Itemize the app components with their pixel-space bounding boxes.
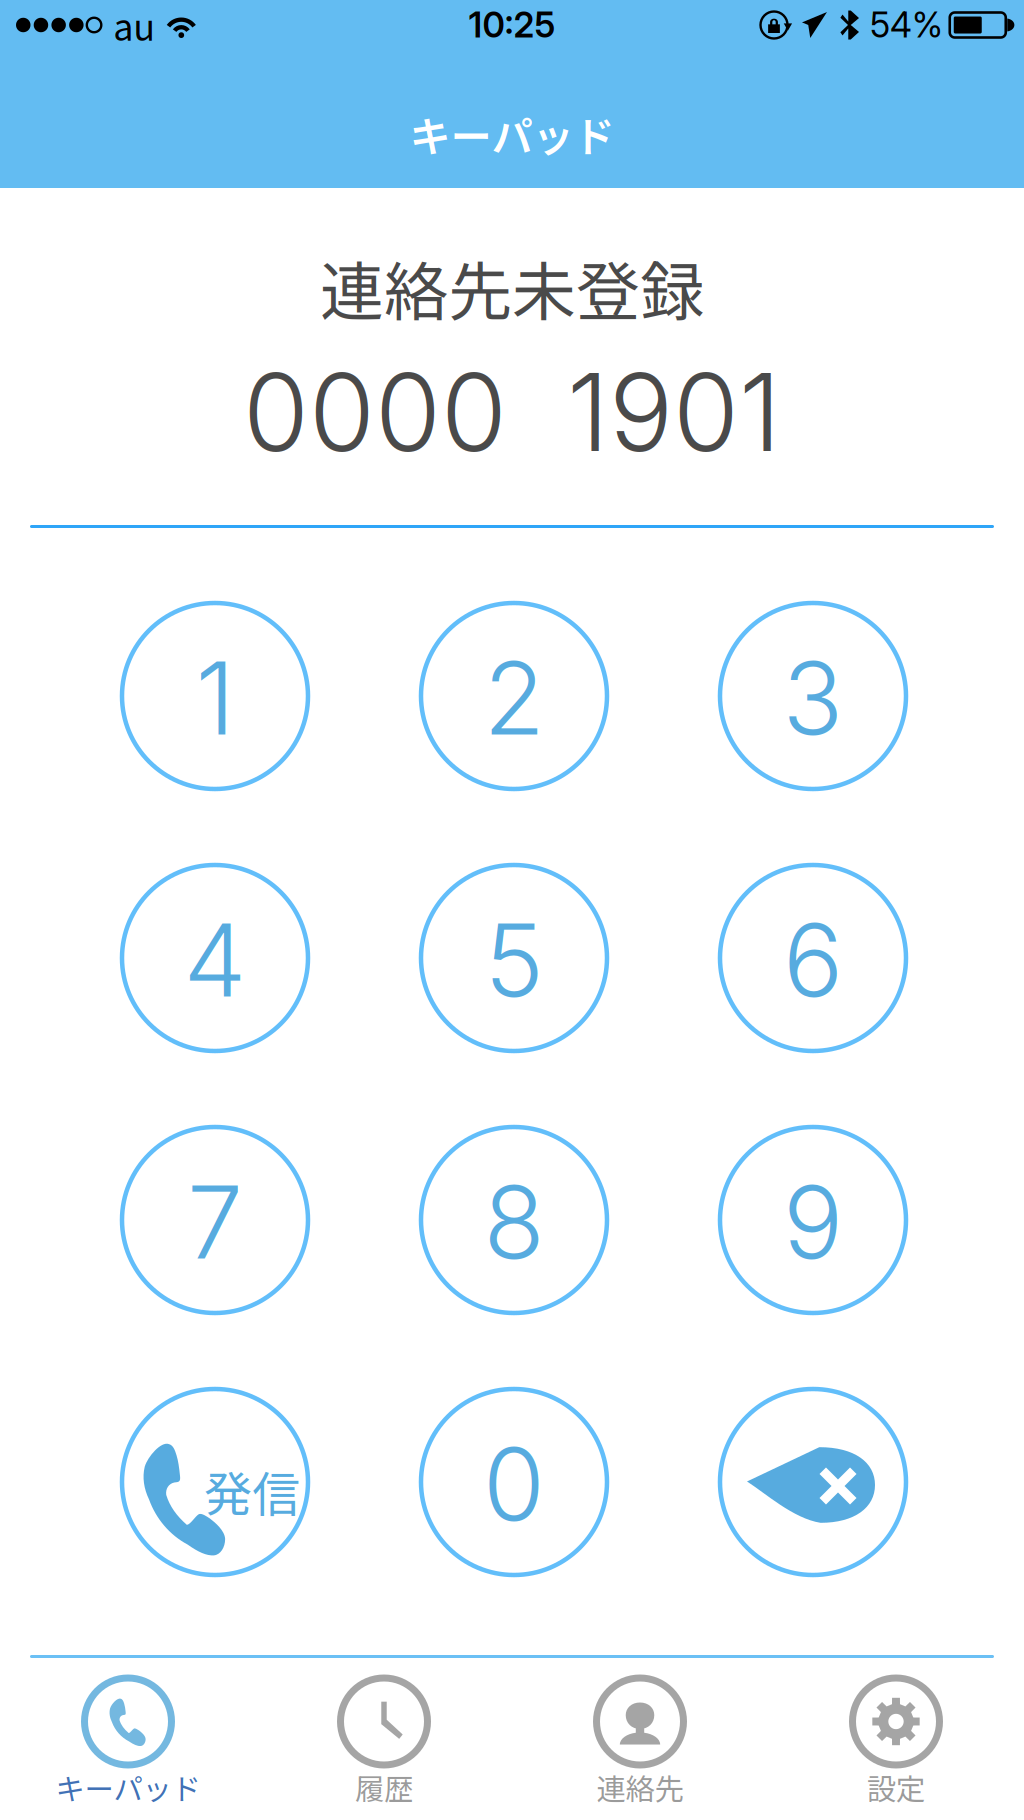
button[interactable]: 5 <box>421 865 607 1051</box>
button[interactable]: 8 <box>421 1127 607 1313</box>
button[interactable]: 設定 <box>768 1678 1024 1808</box>
button[interactable]: 0 <box>421 1389 607 1575</box>
staticText: 7 <box>187 1161 243 1282</box>
button[interactable]: 9 <box>720 1127 906 1313</box>
button[interactable]: 3 <box>720 603 906 789</box>
staticText: 0 <box>483 1423 545 1544</box>
staticText: 設定 <box>867 1766 925 1808</box>
staticText: キーパッド <box>409 104 614 164</box>
button[interactable]: 削除 <box>720 1389 906 1575</box>
staticText: 履歴 <box>355 1766 413 1808</box>
staticText: 4 <box>183 899 246 1020</box>
staticText: 0000 1901 <box>243 348 781 477</box>
staticText: 連絡先 <box>596 1766 683 1808</box>
button[interactable]: 4 <box>122 865 308 1051</box>
staticText: 1 <box>195 637 234 758</box>
staticText: 発信 <box>204 1456 300 1526</box>
button[interactable]: 1 <box>122 603 308 789</box>
button[interactable]: 6 <box>720 865 906 1051</box>
staticText: 3 <box>782 637 843 758</box>
staticText: キーパッド <box>55 1766 200 1808</box>
staticText: 連絡先未登録 <box>320 241 704 334</box>
staticText: 9 <box>783 1161 843 1282</box>
button[interactable]: キーパッド <box>0 1678 256 1808</box>
button[interactable]: 連絡先 <box>512 1678 768 1808</box>
button[interactable]: 履歴 <box>256 1678 512 1808</box>
staticText: 8 <box>483 1161 544 1282</box>
button[interactable]: 2 <box>421 603 607 789</box>
staticText: 2 <box>483 637 544 758</box>
staticText: 5 <box>484 899 543 1020</box>
button[interactable]: 発信 <box>122 1389 308 1575</box>
button[interactable]: 7 <box>122 1127 308 1313</box>
staticText: au <box>113 0 155 51</box>
staticText: 6 <box>783 899 843 1020</box>
staticText: 10:25 <box>468 4 555 46</box>
staticText: 54% <box>870 4 943 46</box>
